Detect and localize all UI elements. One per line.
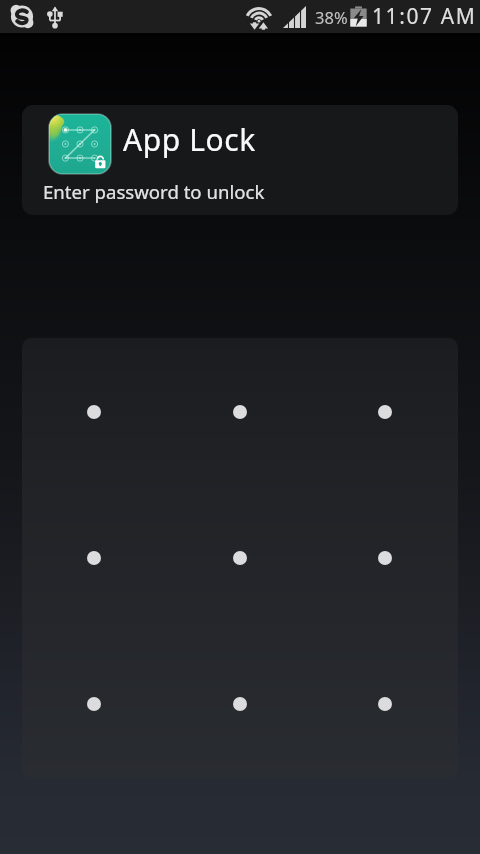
staticText: 11:07 AM bbox=[372, 2, 477, 31]
button[interactable]: Pattern dot 7 bbox=[70, 680, 118, 728]
staticText: Enter password to unlock bbox=[43, 179, 265, 204]
button[interactable]: Pattern dot 9 bbox=[361, 680, 409, 728]
button[interactable]: Pattern dot 8 bbox=[216, 680, 264, 728]
button[interactable]: Pattern dot 3 bbox=[361, 388, 409, 436]
button[interactable]: App Lock bbox=[22, 105, 458, 215]
button[interactable]: Pattern dot 4 bbox=[70, 534, 118, 582]
button[interactable]: Pattern dot 1 bbox=[70, 388, 118, 436]
button[interactable]: Pattern dot 5 bbox=[216, 534, 264, 582]
staticText: 38% bbox=[315, 6, 348, 28]
button[interactable]: Pattern dot 2 bbox=[216, 388, 264, 436]
button[interactable]: Pattern unlock area bbox=[22, 338, 458, 778]
button[interactable]: Pattern dot 6 bbox=[361, 534, 409, 582]
staticText: App Lock bbox=[123, 119, 256, 160]
